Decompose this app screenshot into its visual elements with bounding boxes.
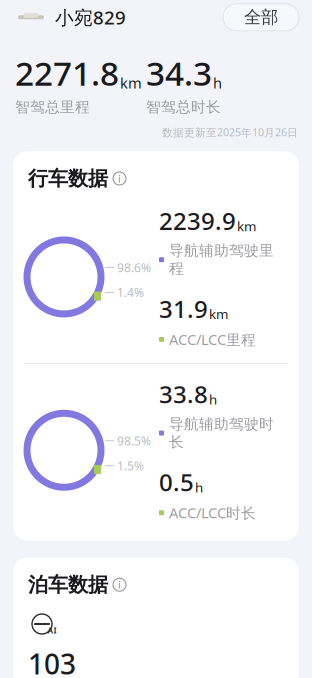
staticText: 小宛829 (55, 5, 126, 30)
button[interactable]: 行车数据 (13, 151, 299, 193)
staticText: ACC/LCC里程 (169, 330, 256, 349)
staticText: 98.5% (117, 433, 151, 449)
staticText: 行车数据 (28, 166, 108, 191)
staticText: 1.4% (117, 284, 144, 300)
staticText: 98.6% (117, 259, 151, 275)
staticText: 103 (28, 645, 76, 678)
staticText: AI (47, 625, 56, 636)
staticText: 数据更新至2025年10月26日 (162, 125, 298, 139)
staticText: km (209, 305, 228, 323)
staticText: h (195, 478, 203, 496)
staticText: 导航辅助驾驶时长 (169, 415, 274, 451)
button[interactable]: 全部 (223, 4, 299, 31)
staticText: 0.5 (159, 466, 194, 498)
staticText: 2271.8 (15, 51, 119, 95)
staticText: i (118, 171, 121, 186)
button[interactable]: 小宛829 (0, 5, 126, 30)
staticText: 34.3 (146, 51, 212, 95)
staticText: ACC/LCC时长 (169, 503, 256, 522)
button[interactable]: 泊车数据 (13, 557, 299, 599)
staticText: 33.8 (159, 378, 208, 410)
staticText: 智驾总里程 (15, 98, 90, 116)
staticText: 全部 (244, 7, 278, 28)
staticText: km (120, 73, 142, 93)
staticText: h (209, 390, 217, 408)
staticText: 泊车数据 (28, 572, 108, 597)
staticText: 2239.9 (159, 205, 236, 237)
staticText: 1.5% (117, 458, 144, 474)
staticText: 导航辅助驾驶里程 (169, 242, 274, 278)
staticText: 智驾总时长 (146, 98, 221, 116)
staticText: i (118, 578, 121, 592)
staticText: h (213, 73, 222, 93)
staticText: 31.9 (159, 293, 208, 325)
staticText: km (237, 217, 256, 235)
